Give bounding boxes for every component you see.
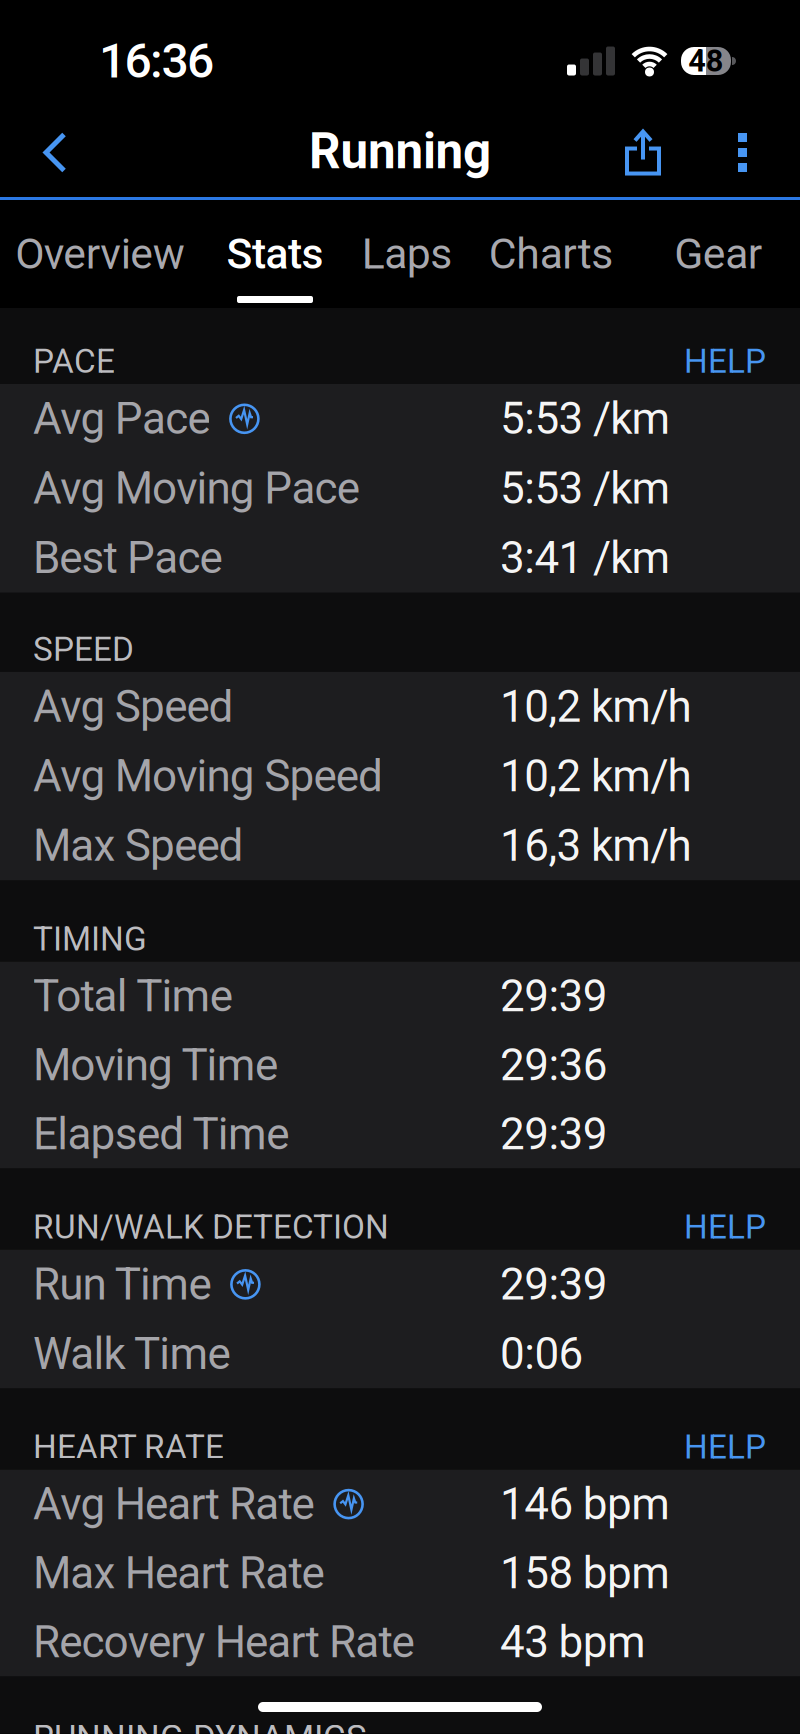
staticText: 0:06 [500, 1328, 584, 1380]
button[interactable]: Show chart [230, 405, 258, 433]
staticText: 16:36 [99, 33, 214, 89]
staticText: 3:41 /km [500, 532, 670, 584]
button[interactable]: Show chart [335, 1490, 363, 1518]
staticText: PACE [33, 342, 115, 381]
button[interactable]: Stats [200, 200, 350, 308]
staticText: 29:39 [500, 1259, 608, 1310]
staticText: 10,2 km/h [500, 681, 692, 732]
staticText: Best Pace [33, 532, 223, 584]
staticText: RUN/WALK DETECTION [33, 1207, 389, 1247]
staticText: SPEED [33, 630, 134, 669]
staticText: Stats [226, 229, 323, 279]
button[interactable]: Gear [638, 200, 798, 308]
button[interactable]: HELP [684, 1207, 766, 1247]
staticText: Avg Speed [33, 681, 234, 732]
staticText: HEART RATE [33, 1427, 224, 1467]
staticText: TIMING [33, 919, 147, 959]
staticText: Total Time [33, 970, 233, 1022]
staticText: 29:39 [500, 1108, 608, 1160]
button[interactable]: Back [0, 131, 88, 173]
staticText: 146 bpm [500, 1478, 670, 1530]
staticText: Avg Heart Rate [33, 1478, 315, 1530]
staticText: Max Heart Rate [33, 1547, 325, 1599]
button[interactable]: Overview [0, 200, 200, 308]
button[interactable]: HELP [684, 342, 766, 381]
staticText: Max Speed [33, 820, 244, 872]
button[interactable]: Charts [464, 200, 638, 308]
staticText: Charts [489, 229, 613, 279]
staticText: Running [309, 123, 491, 180]
staticText: Walk Time [33, 1328, 231, 1380]
staticText: Laps [362, 229, 452, 279]
staticText: Avg Moving Pace [33, 463, 360, 514]
staticText: 5:53 /km [500, 393, 670, 445]
staticText: 48 [688, 43, 724, 79]
staticText: HELP [684, 1207, 766, 1247]
staticText: 158 bpm [500, 1547, 670, 1599]
staticText: Avg Pace [33, 393, 210, 445]
staticText: Recovery Heart Rate [33, 1616, 415, 1668]
staticText: 5:53 /km [500, 463, 670, 514]
staticText: 16,3 km/h [500, 820, 692, 872]
button[interactable]: More [699, 133, 800, 172]
staticText: Overview [15, 229, 185, 279]
staticText: Gear [674, 229, 762, 279]
button[interactable]: HELP [684, 1427, 766, 1467]
staticText: RUNNING DYNAMICS [33, 1718, 367, 1734]
staticText: 10,2 km/h [500, 750, 692, 802]
staticText: HELP [684, 342, 766, 381]
staticText: Run Time [33, 1259, 211, 1310]
staticText: 29:36 [500, 1039, 608, 1091]
button[interactable]: Show chart [231, 1270, 259, 1298]
staticText: Moving Time [33, 1039, 278, 1091]
staticText: Avg Moving Speed [33, 750, 383, 802]
staticText: Elapsed Time [33, 1108, 289, 1160]
staticText: HELP [684, 1427, 766, 1467]
button[interactable]: Laps [350, 200, 464, 308]
button[interactable]: Share [605, 128, 699, 176]
staticText: 43 bpm [500, 1616, 646, 1668]
staticText: 29:39 [500, 970, 608, 1022]
